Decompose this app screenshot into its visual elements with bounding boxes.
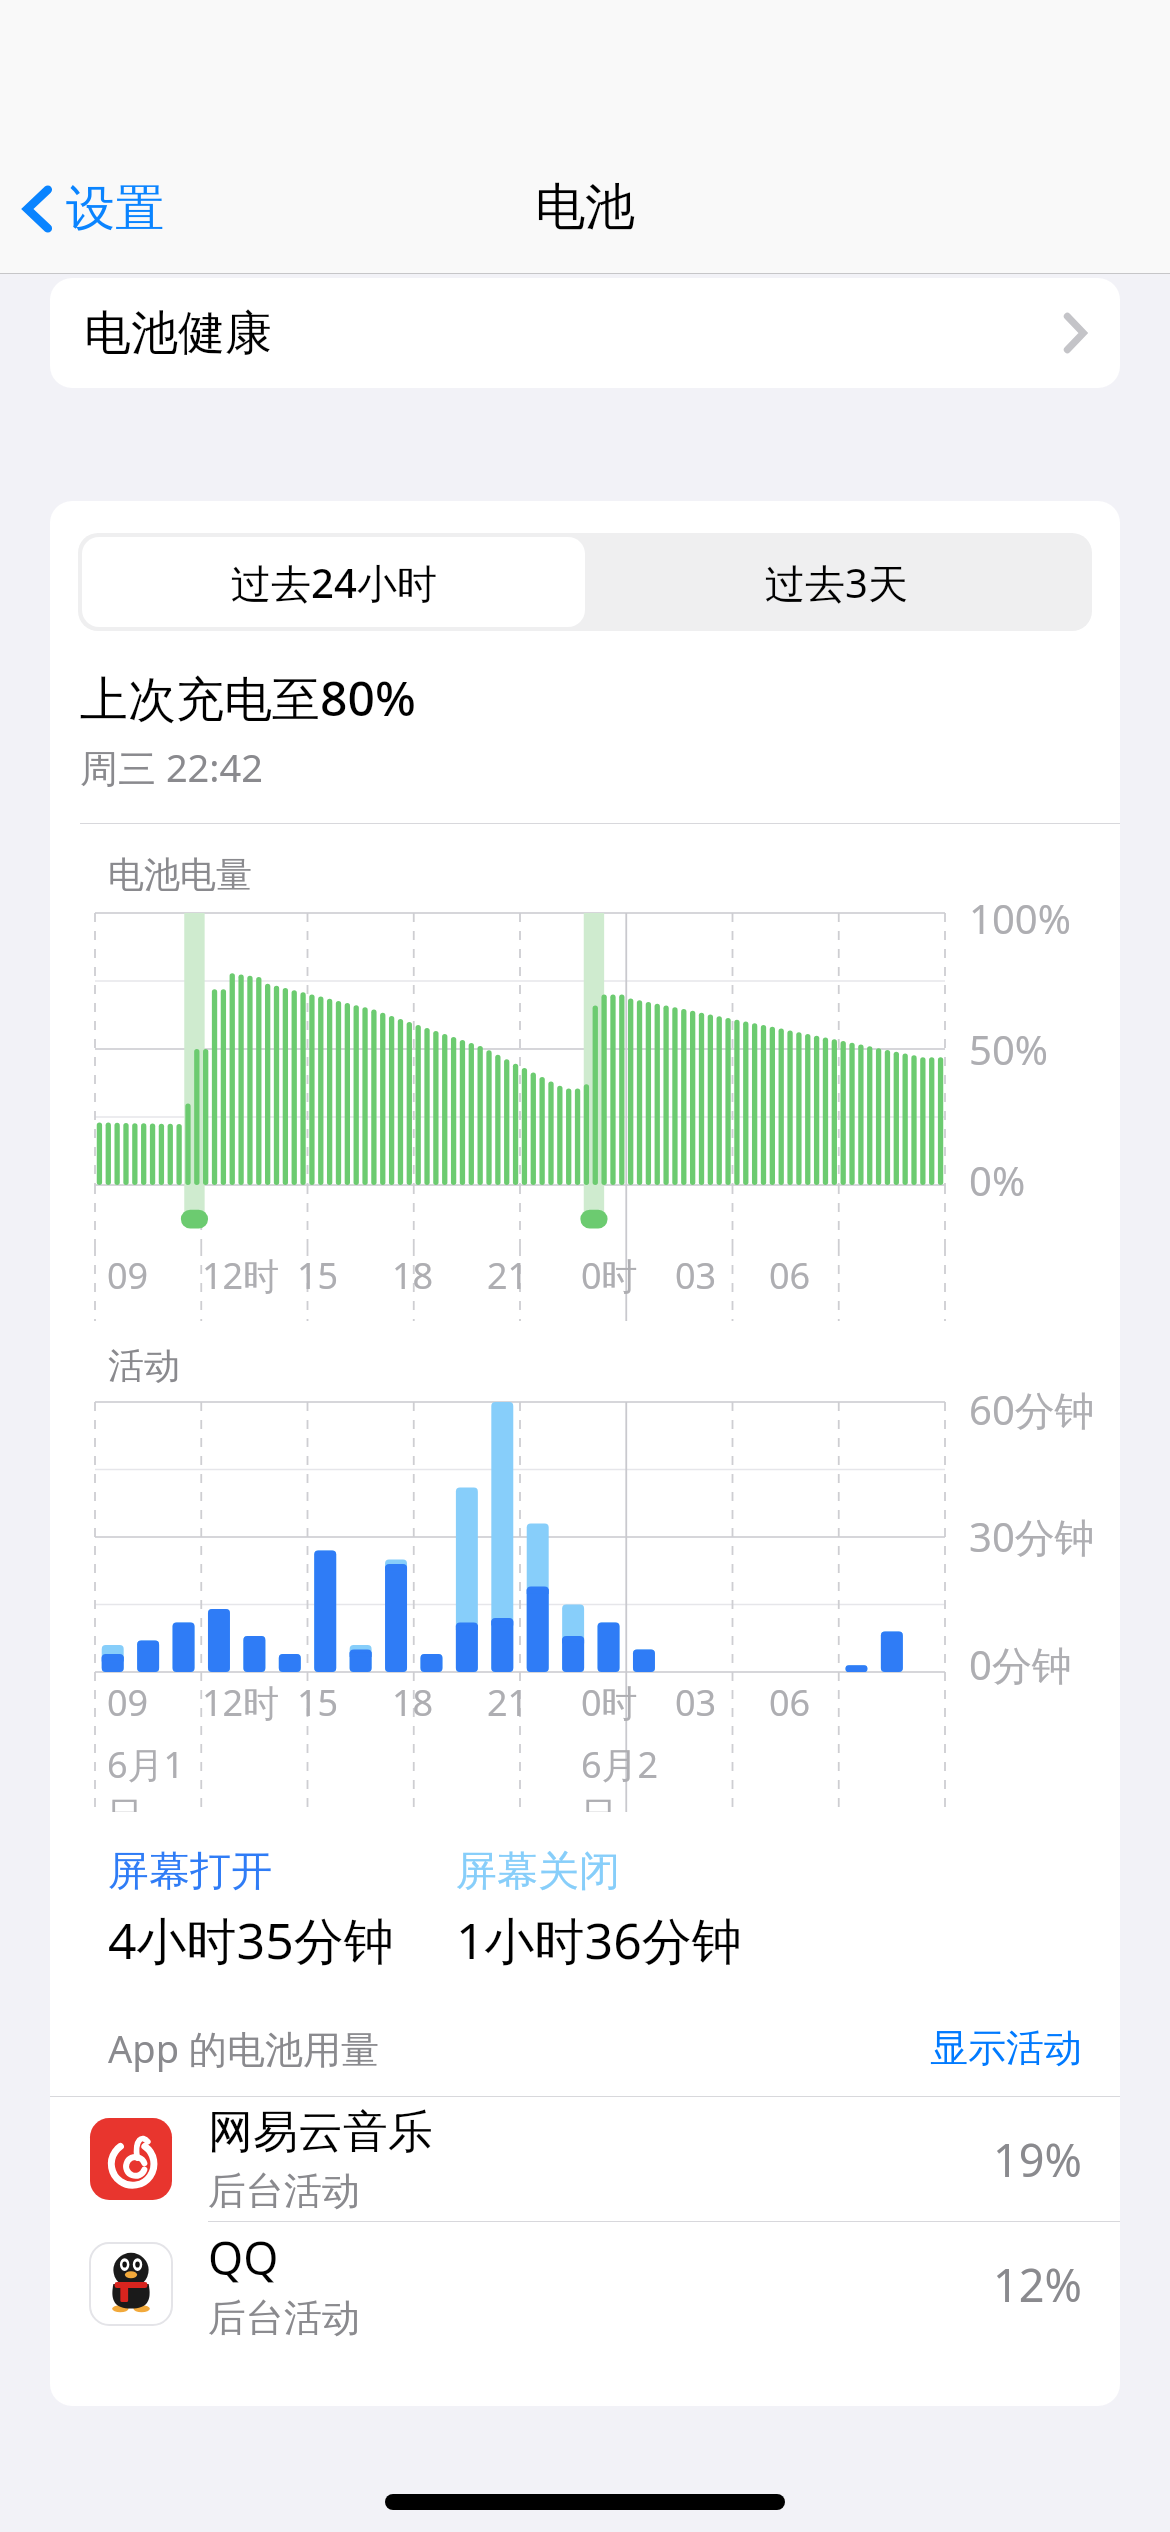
staticText: 后台活动 [208,2167,360,2215]
staticText: 6月2日 [581,1740,663,1812]
staticText: 06 [769,1251,811,1300]
staticText: 09 [107,1678,149,1727]
staticText: App 的电池用量 [108,2022,379,2074]
staticText: 过去24小时 [231,555,437,610]
other: Back [24,186,52,232]
staticText: 周三 22:42 [80,741,264,793]
staticText: 电池电量 [108,852,252,897]
staticText: 后台活动 [208,2294,360,2342]
staticText: 15 [297,1251,339,1300]
staticText: 03 [675,1678,717,1727]
staticText: 21 [487,1251,529,1300]
button[interactable]: 过去3天 [585,537,1088,627]
button[interactable]: 网易云音乐 [50,2097,1120,2221]
button[interactable]: 过去24小时 [82,537,585,627]
staticText: 12% [993,2254,1082,2315]
staticText: 4小时35分钟 [108,1906,394,1974]
staticText: 03 [675,1251,717,1300]
staticText: 0% [969,1153,1026,1207]
staticText: 屏幕关闭 [456,1846,620,1898]
staticText: 12时 [202,1678,280,1727]
staticText: 0分钟 [969,1637,1072,1692]
button[interactable]: Back [0,168,184,250]
staticText: 19% [993,2129,1082,2190]
staticText: 屏幕打开 [108,1846,272,1898]
staticText: 18 [392,1251,434,1300]
staticText: 网易云音乐 [208,2104,433,2161]
staticText: 30分钟 [969,1509,1095,1564]
button[interactable]: 电池健康 [50,278,1120,388]
staticText: 100% [969,891,1071,945]
staticText: 06 [769,1678,811,1727]
staticText: 设置 [66,178,164,240]
staticText: 0时 [581,1251,638,1300]
staticText: 电池健康 [84,304,272,363]
staticText: 09 [107,1251,149,1300]
staticText: 50% [969,1022,1048,1076]
staticText: 6月1日 [107,1740,190,1812]
staticText: 过去3天 [765,555,908,610]
staticText: 21 [487,1678,529,1727]
staticText: 1小时36分钟 [456,1906,742,1974]
button[interactable]: QQ [50,2222,1120,2346]
staticText: 0时 [581,1678,638,1727]
staticText: 显示活动 [930,2024,1082,2072]
staticText: 15 [297,1678,339,1727]
staticText: 18 [392,1678,434,1727]
staticText: 12时 [202,1251,280,1300]
staticText: 活动 [108,1343,180,1388]
staticText: 60分钟 [969,1382,1095,1437]
staticText: QQ [208,2227,279,2288]
staticText: 电池 [535,176,635,239]
staticText: 上次充电至80% [80,665,416,731]
button[interactable]: 显示活动 [930,2024,1082,2072]
